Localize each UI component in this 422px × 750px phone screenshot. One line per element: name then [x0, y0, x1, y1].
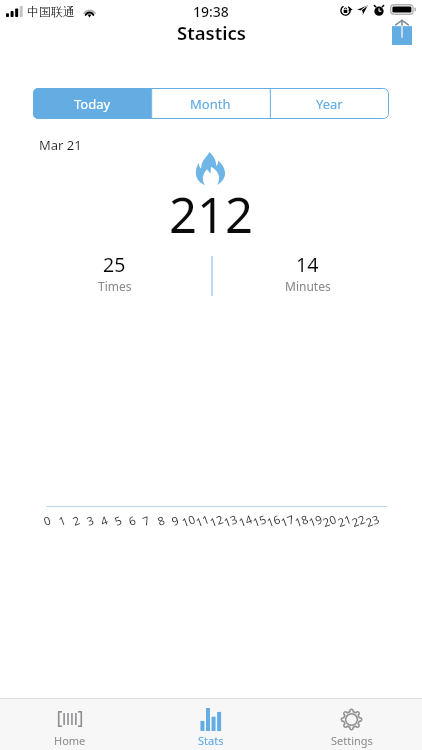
button[interactable]: Year: [270, 88, 389, 119]
staticText: 7: [140, 512, 153, 530]
staticText: 中国联通: [27, 4, 75, 19]
staticText: 14: [237, 511, 255, 531]
staticText: 1: [56, 512, 69, 530]
staticText: 19: [307, 511, 325, 531]
staticText: 14: [296, 251, 319, 278]
staticText: 0: [41, 512, 54, 530]
button[interactable]: Today: [33, 88, 151, 119]
staticText: 17: [279, 511, 297, 531]
staticText: Mar 21: [39, 136, 82, 154]
staticText: 25: [103, 251, 126, 278]
staticText: 9: [169, 512, 182, 530]
staticText: 13: [222, 511, 240, 531]
staticText: Month: [190, 95, 231, 113]
staticText: 4: [98, 512, 111, 530]
staticText: 6: [126, 512, 139, 530]
staticText: Home: [54, 733, 86, 748]
staticText: 21: [336, 511, 354, 531]
staticText: Minutes: [285, 278, 331, 294]
staticText: Year: [316, 95, 343, 113]
staticText: 5: [112, 512, 125, 530]
staticText: Today: [74, 95, 111, 113]
staticText: Settings: [331, 733, 373, 748]
staticText: 10: [180, 511, 198, 531]
staticText: Times: [98, 278, 132, 294]
staticText: 16: [265, 511, 283, 531]
staticText: 23: [364, 511, 382, 531]
button[interactable]: Stats: [140, 699, 281, 750]
button[interactable]: Month: [151, 88, 270, 119]
staticText: 15: [251, 511, 269, 531]
staticText: 3: [84, 512, 97, 530]
button[interactable]: Settings: [281, 699, 422, 750]
staticText: 22: [350, 511, 368, 531]
staticText: Stats: [198, 733, 224, 748]
staticText: 20: [321, 511, 339, 531]
staticText: 212: [169, 181, 254, 248]
staticText: Stastics: [177, 20, 246, 45]
staticText: 8: [155, 512, 168, 530]
staticText: 11: [194, 511, 212, 531]
button[interactable]: Home: [0, 699, 140, 750]
staticText: 19:38: [193, 2, 229, 21]
staticText: 18: [293, 511, 311, 531]
button[interactable]: Share: [392, 19, 412, 45]
staticText: 12: [208, 511, 226, 531]
staticText: 2: [70, 512, 83, 530]
